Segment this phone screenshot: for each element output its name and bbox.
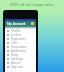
- staticText: Help: [11, 53, 18, 57]
- button[interactable]: Help: [5, 53, 36, 57]
- staticText: Addresses: [11, 49, 27, 53]
- button[interactable]: Cart: [5, 41, 36, 45]
- button[interactable]: Payments: [5, 37, 36, 41]
- staticText: Settings: [11, 57, 24, 61]
- button[interactable]: Addresses: [5, 49, 36, 53]
- button[interactable]: 50% off on in-app sales: [0, 0, 64, 8]
- staticText: Payments: [11, 37, 26, 41]
- button[interactable]: Orders: [5, 33, 36, 37]
- button[interactable]: Sign out: [5, 65, 36, 69]
- button[interactable]: Profile: [5, 29, 36, 33]
- button[interactable]: Profile: [30, 21, 35, 26]
- staticText: Profile: [11, 29, 21, 33]
- staticText: Cart: [11, 41, 18, 45]
- button[interactable]: Favourites: [5, 45, 36, 49]
- button[interactable]: Settings: [5, 57, 36, 61]
- staticText: 50% off on in-app sales: [10, 2, 54, 7]
- staticText: Sign out: [11, 65, 24, 69]
- staticText: Orders: [11, 33, 22, 37]
- staticText: Favourites: [11, 45, 27, 49]
- button[interactable]: About: [5, 61, 36, 65]
- staticText: About: [11, 61, 21, 65]
- staticText: My Account: [7, 21, 26, 26]
